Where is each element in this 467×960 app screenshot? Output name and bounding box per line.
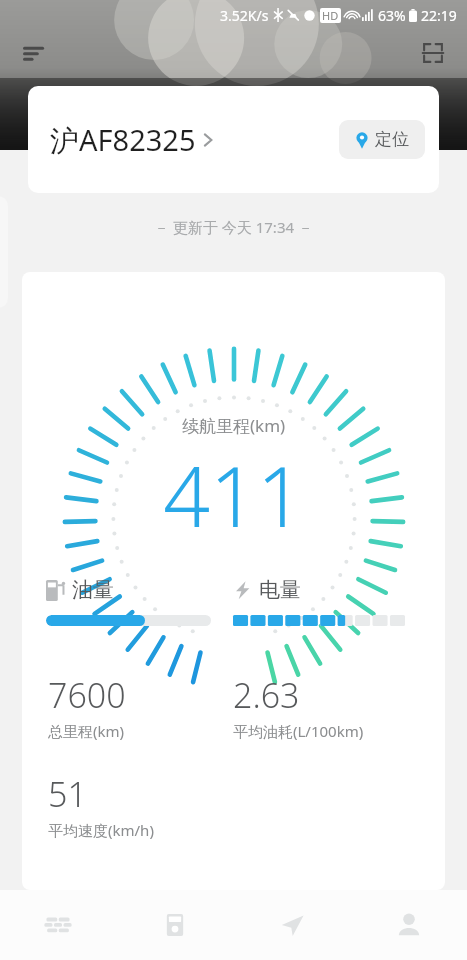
staticText: 平均速度(km/h) — [48, 820, 154, 840]
staticText: 22:19 — [421, 6, 457, 25]
button[interactable]: 沪AF82325 — [50, 120, 215, 160]
button[interactable]: 51 — [48, 771, 233, 840]
staticText: 63% — [378, 6, 406, 25]
staticText: 411 — [163, 439, 304, 551]
button[interactable]: Vehicle — [0, 890, 116, 960]
button[interactable]: 定位 — [339, 120, 425, 159]
button[interactable]: 2.63 — [233, 672, 419, 741]
staticText: 定位 — [375, 129, 409, 150]
button[interactable]: 7600 — [48, 672, 233, 741]
staticText: 平均油耗(L/100km) — [233, 721, 364, 741]
staticText: 油量 — [72, 577, 114, 603]
staticText: 续航里程(km) — [182, 414, 286, 437]
button[interactable]: Scan — [413, 33, 453, 73]
staticText: 3.52K/s — [220, 6, 269, 25]
staticText: 电量 — [259, 577, 301, 603]
staticText: HD — [322, 8, 339, 23]
staticText: 总里程(km) — [48, 721, 125, 741]
button[interactable]: Menu — [14, 33, 54, 73]
staticText: － 更新于 今天 17:34 － — [154, 217, 313, 237]
staticText: 7600 — [48, 672, 126, 718]
button[interactable]: Profile — [350, 890, 467, 960]
staticText: 51 — [48, 771, 87, 817]
staticText: 沪AF82325 — [50, 120, 196, 160]
button[interactable]: Navigation — [233, 890, 350, 960]
button[interactable]: Control — [116, 890, 233, 960]
staticText: 2.63 — [233, 672, 300, 718]
